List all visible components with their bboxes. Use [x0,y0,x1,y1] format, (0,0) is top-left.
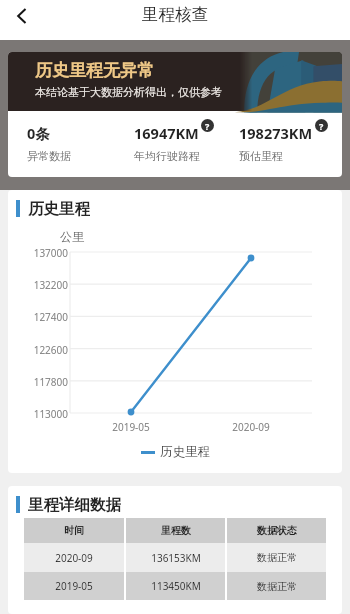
staticText: 0条 [27,123,50,143]
staticText: 113000 [8,407,68,421]
staticText: 16947KM [134,123,199,143]
staticText: 本结论基于大数据分析得出，仅供参考 [35,85,222,99]
staticText: 历史里程 [28,199,90,218]
staticText: 198273KM [239,123,313,143]
staticText: 137000 [8,246,68,260]
staticText: 里程数 [161,524,191,537]
staticText: 公里 [60,229,84,244]
staticText: 2020-09 [221,420,281,434]
staticText: ? [205,120,210,132]
staticText: 预估里程 [239,149,283,163]
button[interactable]: Help [201,119,214,132]
button[interactable]: Back [6,0,37,31]
staticText: 年均行驶路程 [134,149,200,163]
staticText: 里程详细数据 [28,495,121,514]
staticText: 127400 [8,310,68,324]
staticText: 异常数据 [27,149,71,163]
staticText: ? [319,120,324,132]
staticText: 136153KM [151,551,201,565]
staticText: 2020-09 [55,551,93,565]
staticText: 2019-05 [101,420,161,434]
staticText: 2019-05 [55,579,93,593]
staticText: 117800 [8,375,68,389]
staticText: 历史里程无异常 [35,60,154,81]
button[interactable]: Help [315,119,328,132]
staticText: 113450KM [151,579,201,593]
staticText: 数据正常 [257,551,297,564]
staticText: 里程核查 [142,4,208,25]
staticText: 数据正常 [257,580,297,593]
staticText: 时间 [64,524,84,537]
staticText: 122600 [8,343,68,357]
staticText: 132200 [8,278,68,292]
staticText: 历史里程 [160,444,210,460]
staticText: 数据状态 [257,524,297,537]
